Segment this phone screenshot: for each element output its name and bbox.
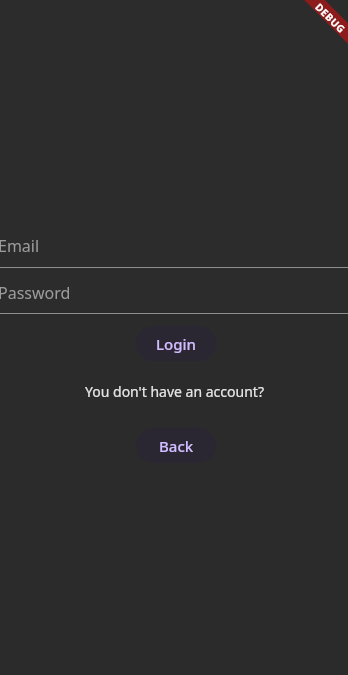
- staticText: DEBUG: [312, 0, 348, 36]
- staticText: Email: [0, 235, 40, 257]
- staticText: Back: [159, 436, 194, 456]
- button[interactable]: Login: [136, 326, 216, 361]
- staticText: Password: [0, 282, 71, 304]
- other: Debug build banner: [286, 0, 348, 62]
- button[interactable]: Password: [0, 272, 348, 313]
- button[interactable]: Email: [0, 225, 348, 267]
- staticText: You don't have an account?: [85, 382, 264, 401]
- button[interactable]: Back: [136, 428, 216, 463]
- staticText: Login: [156, 334, 196, 354]
